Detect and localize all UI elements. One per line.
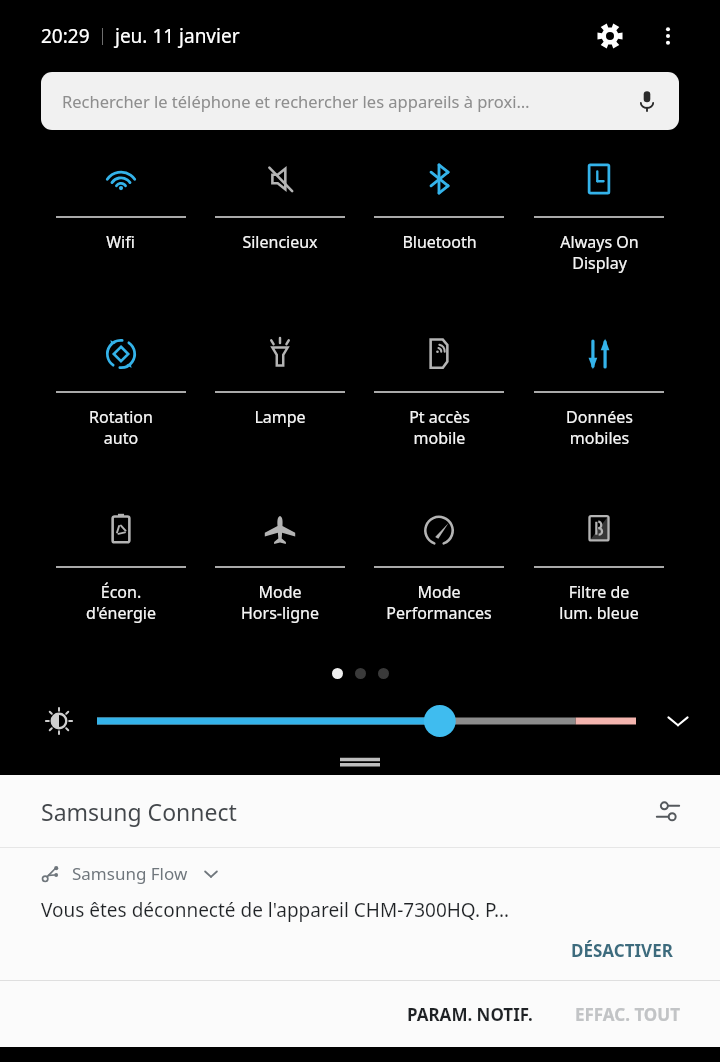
button[interactable]: Filtre de lum. bleue (519, 492, 679, 653)
button[interactable]: Rotation auto (41, 317, 200, 478)
button[interactable]: Écon. d'énergie (41, 492, 200, 653)
button[interactable]: Mode Hors-ligne (200, 492, 359, 653)
staticText: PARAM. NOTIF. (407, 1003, 533, 1026)
button[interactable]: Bluetooth (359, 142, 519, 303)
staticText: Rechercher le téléphone et rechercher le… (62, 90, 530, 112)
staticText: Wifi (106, 231, 135, 253)
staticText: Samsung Flow (72, 862, 188, 885)
button[interactable]: Rechercher le téléphone et rechercher le… (41, 72, 679, 130)
staticText: Écon. d'énergie (86, 581, 156, 624)
button[interactable]: EFFAC. TOUT (565, 995, 690, 1034)
staticText: Mode Performances (386, 581, 492, 624)
staticText: Pt accès mobile (409, 406, 470, 449)
staticText: EFFAC. TOUT (575, 1003, 680, 1026)
button[interactable]: Expand brightness settings (656, 699, 700, 743)
staticText: Lampe (254, 406, 306, 428)
staticText: jeu. 11 janvier (115, 23, 240, 49)
button[interactable]: Pt accès mobile (359, 317, 519, 478)
staticText: Mode Hors-ligne (241, 581, 319, 624)
staticText: Silencieux (242, 231, 318, 253)
button[interactable] (97, 704, 636, 738)
button[interactable]: PARAM. NOTIF. (397, 995, 543, 1034)
staticText: Samsung Connect (41, 796, 237, 827)
button[interactable]: Settings (586, 12, 634, 60)
staticText: Always On Display (560, 231, 639, 274)
button[interactable]: Notification settings (646, 789, 690, 833)
button[interactable]: DÉSACTIVER (565, 935, 679, 966)
button[interactable]: Silencieux (200, 142, 359, 303)
button[interactable]: Samsung Flow (0, 848, 720, 980)
button[interactable]: Wifi (41, 142, 200, 303)
staticText: Données mobiles (566, 406, 633, 449)
button[interactable]: More options (646, 14, 690, 58)
staticText: Vous êtes déconnecté de l'appareil CHM-7… (41, 897, 510, 923)
button[interactable]: Expand notification (200, 863, 222, 885)
button[interactable]: Mode Performances (359, 492, 519, 653)
button[interactable]: Always On Display (519, 142, 679, 303)
staticText: Bluetooth (402, 231, 477, 253)
button[interactable]: Voice search (629, 83, 665, 119)
staticText: Rotation auto (89, 406, 153, 449)
button[interactable]: Lampe (200, 317, 359, 478)
staticText: Filtre de lum. bleue (559, 581, 639, 624)
staticText: 20:29 (41, 23, 90, 49)
button[interactable]: Auto brightness (41, 703, 77, 739)
button[interactable]: Données mobiles (519, 317, 679, 478)
staticText: DÉSACTIVER (571, 939, 673, 962)
button[interactable]: Samsung Connect (0, 775, 720, 847)
